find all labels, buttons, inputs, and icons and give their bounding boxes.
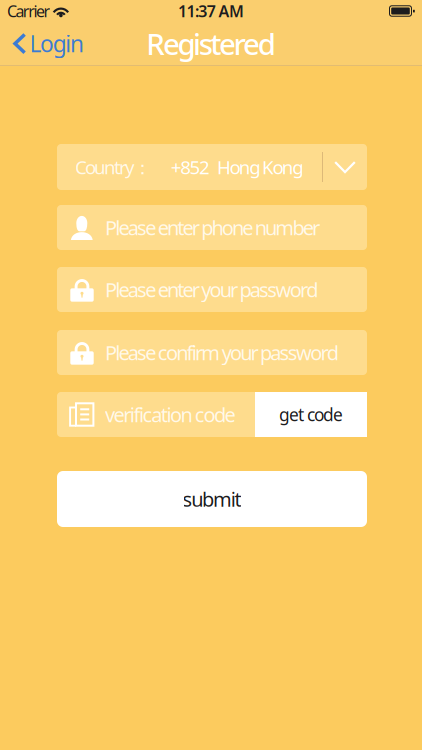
staticText: Country： [75, 155, 152, 179]
staticText: submit [182, 486, 241, 512]
staticText: verification code [105, 401, 236, 428]
button[interactable]: get code [255, 392, 367, 437]
button[interactable]: submit [57, 471, 367, 527]
staticText: Please enter your password [105, 276, 318, 303]
staticText: Please confirm your password [105, 339, 339, 366]
staticText: +852 [171, 155, 210, 179]
staticText: get code [279, 403, 343, 426]
button[interactable]: Login [0, 22, 94, 64]
button[interactable]: Country： [57, 144, 367, 190]
staticText: Hong Kong [217, 155, 303, 179]
staticText: Login [29, 28, 84, 58]
staticText: Please enter phone number [105, 214, 320, 241]
staticText: 11:37 AM [178, 0, 244, 22]
staticText: Registered [146, 24, 276, 63]
staticText: Carrier [7, 0, 50, 22]
